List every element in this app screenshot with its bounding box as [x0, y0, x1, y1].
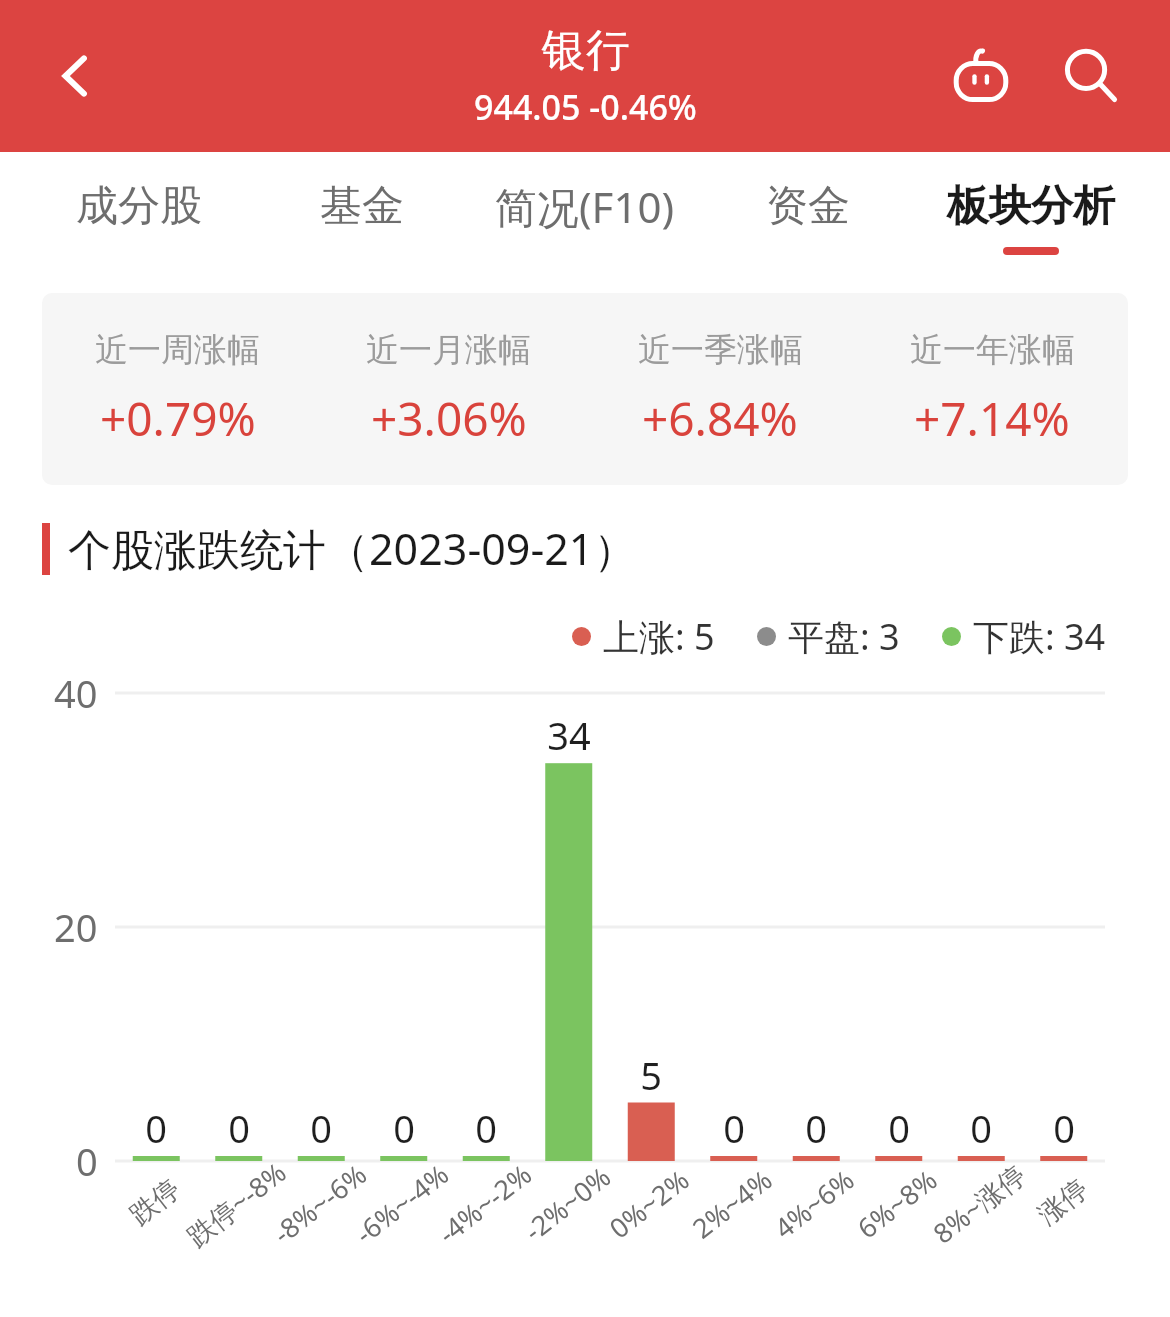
- staticText: 0%~2%: [601, 1161, 697, 1246]
- staticText: 8%~涨停: [925, 1156, 1033, 1251]
- staticText: 5: [640, 1049, 662, 1101]
- staticText: -8%~-6%: [265, 1155, 374, 1252]
- staticText: 跌停: [123, 1172, 187, 1232]
- staticText: -4%~-2%: [430, 1155, 539, 1252]
- staticText: 跌停~-8%: [179, 1153, 294, 1254]
- staticText: 4%~6%: [766, 1161, 862, 1246]
- staticText: 0: [393, 1102, 415, 1154]
- staticText: 0: [310, 1102, 332, 1154]
- staticText: 涨停: [1031, 1172, 1095, 1232]
- button[interactable]: 简况(F10): [473, 152, 696, 282]
- staticText: 个股涨跌统计（2023-09-21）: [68, 519, 637, 578]
- staticText: +7.14%: [914, 387, 1070, 450]
- button[interactable]: AI assistant: [938, 33, 1024, 119]
- staticText: 0: [888, 1102, 910, 1154]
- button[interactable]: Back: [40, 40, 112, 112]
- button[interactable]: 上涨: 5: [572, 612, 715, 661]
- staticText: 0: [970, 1102, 992, 1154]
- staticText: 0: [475, 1102, 497, 1154]
- staticText: 成分股: [76, 180, 202, 233]
- staticText: 银行: [542, 23, 630, 78]
- staticText: +3.06%: [371, 387, 527, 450]
- staticText: 简况(F10): [495, 178, 675, 235]
- staticText: 0: [228, 1102, 250, 1154]
- staticText: 近一周涨幅: [95, 329, 260, 371]
- staticText: -2%~0%: [516, 1158, 618, 1249]
- staticText: 近一月涨幅: [366, 329, 531, 371]
- staticText: +6.84%: [642, 387, 798, 450]
- staticText: 上涨: 5: [603, 612, 715, 661]
- staticText: 34: [547, 709, 591, 761]
- button[interactable]: 板块分析: [919, 152, 1142, 282]
- staticText: 板块分析: [947, 180, 1115, 233]
- button[interactable]: 成分股: [28, 152, 250, 282]
- staticText: 0: [805, 1102, 827, 1154]
- staticText: 下跌: 34: [973, 612, 1106, 661]
- staticText: 近一年涨幅: [910, 329, 1075, 371]
- staticText: 平盘: 3: [788, 612, 900, 661]
- staticText: 0: [1053, 1102, 1075, 1154]
- button[interactable]: 基金: [250, 152, 473, 282]
- button[interactable]: 下跌: 34: [942, 612, 1106, 661]
- staticText: +0.79%: [100, 387, 256, 450]
- staticText: 基金: [320, 180, 404, 233]
- staticText: 0: [145, 1102, 167, 1154]
- staticText: 20: [54, 901, 98, 953]
- staticText: 6%~8%: [849, 1161, 945, 1246]
- button[interactable]: 资金: [696, 152, 919, 282]
- staticText: 40: [54, 667, 98, 719]
- staticText: 944.05 -0.46%: [474, 84, 697, 130]
- staticText: -6%~-4%: [347, 1155, 456, 1252]
- staticText: 0: [76, 1135, 98, 1187]
- button[interactable]: Search: [1048, 33, 1134, 119]
- staticText: 资金: [766, 180, 850, 233]
- staticText: 0: [723, 1102, 745, 1154]
- staticText: 近一季涨幅: [638, 329, 803, 371]
- button[interactable]: 平盘: 3: [757, 612, 900, 661]
- staticText: 2%~4%: [684, 1161, 780, 1246]
